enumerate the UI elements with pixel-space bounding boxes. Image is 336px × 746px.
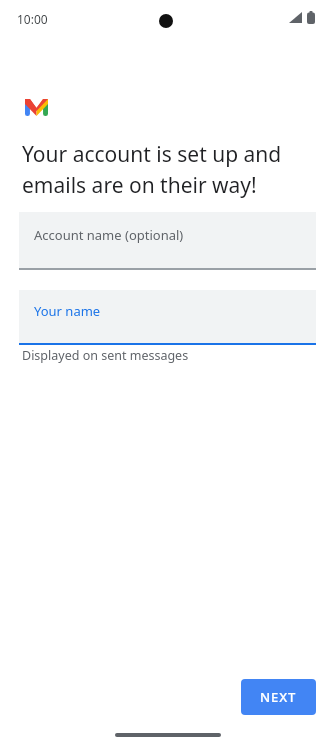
button[interactable]: Account name (optional): [19, 212, 316, 270]
other: Gmail: [25, 99, 48, 116]
staticText: Displayed on sent messages: [22, 347, 189, 364]
button[interactable]: NEXT: [241, 679, 316, 715]
staticText: NEXT: [260, 688, 297, 706]
staticText: Account name (optional): [34, 226, 184, 244]
staticText: 10:00: [17, 11, 48, 27]
staticText: Your account is set up and emails are on…: [22, 140, 322, 199]
button[interactable]: Your name: [19, 290, 316, 343]
staticText: Your name: [34, 302, 101, 320]
